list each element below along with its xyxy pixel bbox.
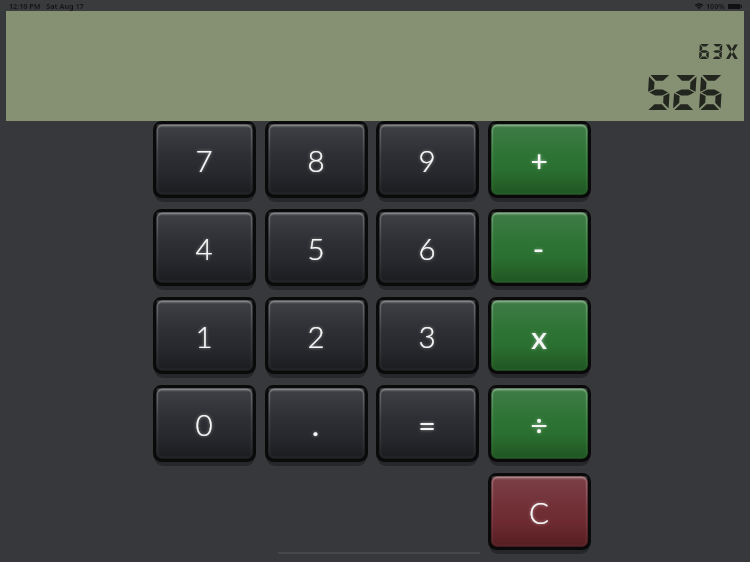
button[interactable]: 9 [376,121,479,203]
staticText: 12:10 PM Sat Aug 17 [9,1,84,11]
button[interactable]: 3 [376,297,479,379]
button[interactable]: 8 [265,121,368,203]
staticText: - [533,231,544,266]
staticText: 3 [418,319,436,354]
staticText: 7 [195,143,213,178]
button[interactable]: = [376,385,479,467]
button[interactable]: ÷ [488,385,591,467]
button[interactable]: 4 [153,209,256,291]
staticText: 100% [706,1,725,11]
button[interactable]: 5 [265,209,368,291]
staticText: . [312,407,319,442]
staticText: 1 [195,319,213,354]
button[interactable]: x [488,297,591,379]
button[interactable]: . [265,385,368,467]
staticText: 6 [418,231,436,266]
staticText: x [531,318,547,356]
staticText: + [530,143,548,178]
staticText: 2 [307,319,325,354]
button[interactable]: 2 [265,297,368,379]
staticText: 8 [307,143,325,178]
staticText: = [418,407,436,442]
button[interactable]: - [488,209,591,291]
button[interactable]: + [488,121,591,203]
staticText: 0 [195,407,213,442]
button[interactable]: 0 [153,385,256,467]
button[interactable]: 7 [153,121,256,203]
button[interactable]: 1 [153,297,256,379]
button[interactable]: C [488,473,591,555]
button[interactable]: 6 [376,209,479,291]
staticText: ÷ [530,407,548,442]
staticText: 4 [195,231,213,266]
staticText: 5 [307,231,325,266]
staticText: C [529,495,549,530]
staticText: 9 [418,143,436,178]
